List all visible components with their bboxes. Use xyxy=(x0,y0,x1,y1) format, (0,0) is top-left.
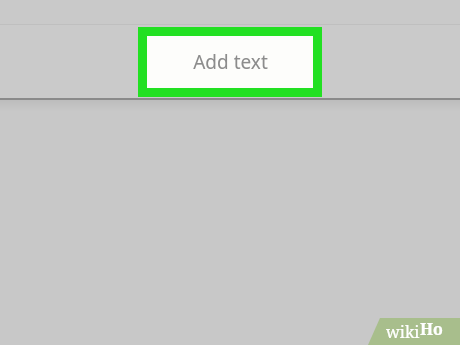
staticText: wiki xyxy=(386,321,420,343)
button[interactable]: Add text xyxy=(138,27,322,97)
staticText: Add text xyxy=(193,49,268,75)
staticText: How xyxy=(420,318,456,345)
